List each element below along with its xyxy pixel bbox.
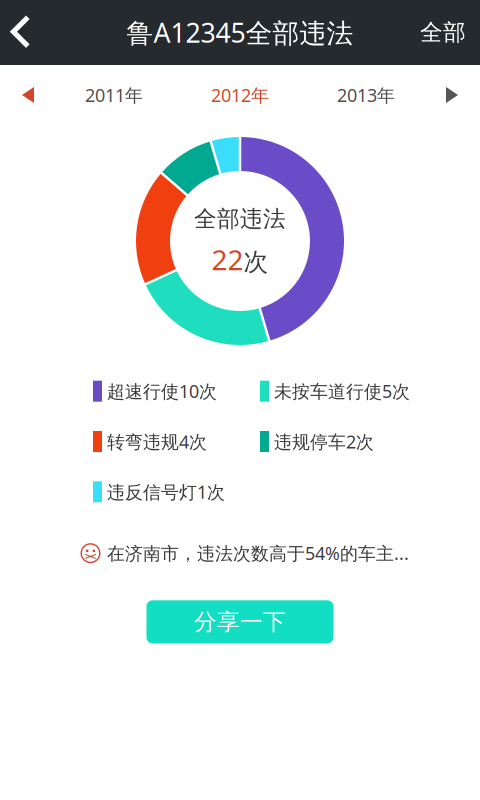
staticText: 违规停车2次	[274, 429, 374, 454]
staticText: 超速行使10次	[107, 379, 217, 403]
staticText: 次	[243, 246, 268, 277]
button[interactable]: Back	[0, 7, 60, 57]
button[interactable]: Previous year	[0, 65, 56, 125]
button[interactable]: 2011年	[56, 65, 172, 125]
staticText: 鲁A12345全部违法	[126, 14, 353, 51]
button[interactable]: 2013年	[308, 65, 424, 125]
button[interactable]: 全部	[400, 5, 480, 59]
button[interactable]: Next year	[424, 65, 480, 125]
button[interactable]: 2012年	[172, 65, 308, 125]
staticText: 全部违法	[194, 205, 286, 233]
staticText: 违反信号灯1次	[107, 480, 225, 504]
staticText: 分享一下	[194, 608, 286, 636]
staticText: 转弯违规4次	[107, 429, 207, 454]
staticText: 未按车道行使5次	[274, 379, 410, 403]
staticText: 2013年	[337, 83, 395, 107]
staticText: 22	[211, 240, 243, 278]
staticText: 全部	[420, 18, 466, 47]
staticText: 在济南市，违法次数高于54%的车主...	[107, 541, 409, 565]
staticText: 2011年	[85, 83, 143, 107]
button[interactable]: 分享一下	[146, 600, 333, 643]
staticText: 2012年	[211, 83, 269, 107]
